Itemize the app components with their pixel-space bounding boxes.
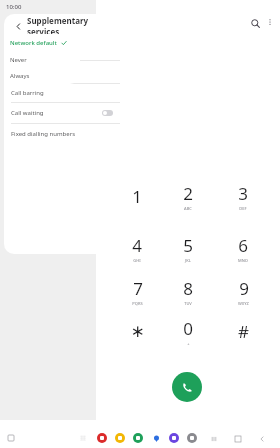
staticText: 6 <box>238 234 248 257</box>
button[interactable]: Back <box>12 20 24 32</box>
button[interactable]: ∗ <box>115 311 159 351</box>
staticText: DEF <box>239 206 247 211</box>
staticText: ABC <box>184 206 192 211</box>
button[interactable] <box>11 61 113 83</box>
button[interactable]: 1 <box>115 176 159 216</box>
staticText: 3 <box>238 182 248 205</box>
staticText: WXYZ <box>238 301 249 306</box>
button[interactable]: Phone <box>132 432 144 444</box>
button[interactable]: # <box>221 311 265 351</box>
staticText: Network default <box>10 39 57 47</box>
button[interactable]: 7 <box>115 271 159 311</box>
button[interactable]: Network default <box>10 34 75 51</box>
button[interactable]: Fixed dialling numbers <box>11 124 113 144</box>
button[interactable]: Call <box>172 372 202 402</box>
staticText: 8 <box>183 277 193 300</box>
button[interactable]: 4 <box>115 228 159 268</box>
button[interactable] <box>11 38 113 60</box>
staticText: Call barring <box>11 89 44 97</box>
button[interactable]: Never <box>10 51 80 68</box>
button[interactable]: Drive <box>150 432 162 444</box>
button[interactable]: Chrome <box>168 432 180 444</box>
button[interactable]: Photos <box>96 432 108 444</box>
staticText: MNO <box>238 258 248 263</box>
button[interactable]: 2 <box>166 176 210 216</box>
staticText: 9 <box>239 277 249 300</box>
button[interactable]: More options <box>262 14 278 30</box>
button[interactable]: 8 <box>166 271 210 311</box>
button[interactable]: Keyboard <box>6 433 16 443</box>
button[interactable]: Call waiting toggle <box>102 110 113 116</box>
button[interactable]: Call barring <box>11 84 113 102</box>
staticText: Supplementary services <box>27 15 120 37</box>
staticText: 4 <box>132 234 142 257</box>
button[interactable]: 0 <box>166 311 210 351</box>
staticText: Call waiting <box>11 109 44 117</box>
staticText: ∗ <box>130 321 145 341</box>
button[interactable]: Settings <box>186 432 198 444</box>
button[interactable]: Recents <box>208 433 220 445</box>
staticText: 1 <box>132 185 142 208</box>
button[interactable]: 9 <box>221 271 265 311</box>
button[interactable]: 6 <box>221 228 265 268</box>
button[interactable]: Always <box>10 68 80 84</box>
button[interactable]: 3 <box>221 176 265 216</box>
button[interactable]: Files <box>114 432 126 444</box>
staticText: Fixed dialling numbers <box>11 130 76 138</box>
staticText: 5 <box>183 234 193 257</box>
staticText: Never <box>10 56 27 64</box>
staticText: 0 <box>183 317 193 340</box>
staticText: TUV <box>184 301 192 306</box>
button[interactable]: Call waiting <box>11 103 113 123</box>
staticText: GHI <box>133 258 141 263</box>
staticText: + <box>187 341 190 346</box>
button[interactable]: Home <box>232 433 244 445</box>
staticText: 2 <box>183 182 193 205</box>
button[interactable]: All apps <box>78 433 88 443</box>
staticText: 7 <box>133 277 143 300</box>
button[interactable]: Search <box>246 14 264 32</box>
staticText: JKL <box>185 258 191 263</box>
button[interactable]: Back <box>256 433 268 445</box>
staticText: # <box>238 320 249 343</box>
button[interactable]: 5 <box>166 228 210 268</box>
staticText: Always <box>10 72 30 80</box>
staticText: 10:00 <box>6 3 22 11</box>
staticText: PQRS <box>132 301 143 306</box>
